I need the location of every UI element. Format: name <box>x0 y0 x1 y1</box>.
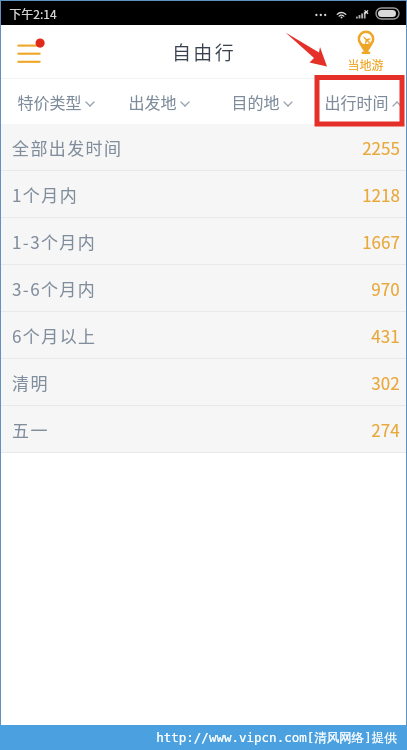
button[interactable]: 1个月内 <box>1 171 406 218</box>
staticText: 302 <box>371 370 400 395</box>
staticText: 1218 <box>362 182 400 207</box>
staticText: 274 <box>371 417 400 442</box>
staticText: 全部出发时间 <box>12 135 123 160</box>
staticText: 431 <box>371 323 400 348</box>
button[interactable]: 3-6个月内 <box>1 265 406 312</box>
button[interactable]: Menu <box>7 30 51 74</box>
button[interactable]: 出行时间 <box>324 79 401 124</box>
staticText: http://www.vipcn.com[清风网络]提供 <box>156 730 397 746</box>
button[interactable]: 清明 <box>1 359 406 406</box>
staticText: 出行时间 <box>324 90 389 113</box>
staticText: 1667 <box>362 229 400 254</box>
staticText: 五一 <box>12 417 49 442</box>
staticText: 6个月以上 <box>12 323 97 348</box>
button[interactable]: 目的地 <box>231 79 292 124</box>
button[interactable]: 6个月以上 <box>1 312 406 359</box>
staticText: 特价类型 <box>17 90 82 113</box>
staticText: 3-6个月内 <box>12 276 97 301</box>
staticText: 目的地 <box>231 90 280 113</box>
button[interactable]: 特价类型 <box>17 79 94 124</box>
button[interactable]: 全部出发时间 <box>1 124 406 171</box>
staticText: 出发地 <box>128 90 177 113</box>
staticText: 当地游 <box>347 56 384 73</box>
staticText: 清明 <box>12 370 49 395</box>
button[interactable]: 出发地 <box>128 79 189 124</box>
button[interactable]: 当地游 <box>347 30 384 73</box>
staticText: 1个月内 <box>12 182 79 207</box>
staticText: 自由行 <box>172 38 236 66</box>
staticText: 下午2:14 <box>9 5 57 22</box>
button[interactable]: 1-3个月内 <box>1 218 406 265</box>
staticText: 1-3个月内 <box>12 229 97 254</box>
staticText: 2255 <box>362 135 400 160</box>
button[interactable]: 五一 <box>1 406 406 453</box>
staticText: 970 <box>371 276 400 301</box>
